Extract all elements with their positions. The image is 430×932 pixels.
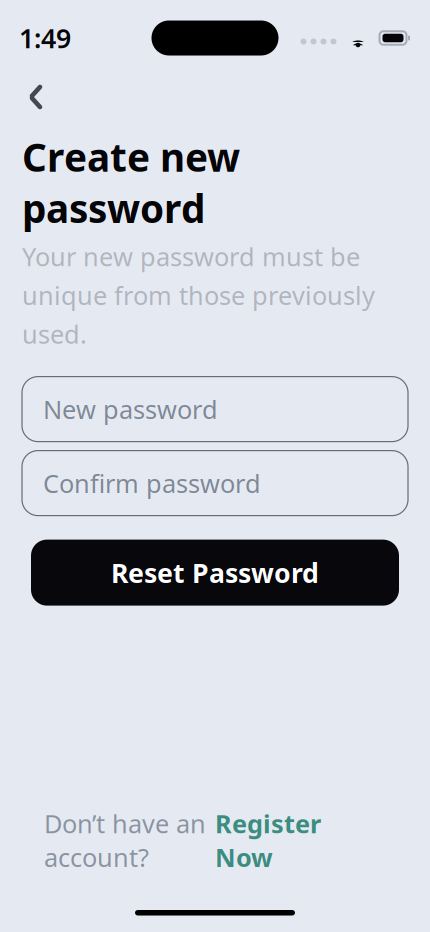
button[interactable]: New password bbox=[22, 377, 408, 442]
staticText: Reset Password bbox=[111, 555, 319, 590]
staticText: New password bbox=[43, 392, 218, 426]
staticText: Your new password must be unique from th… bbox=[22, 240, 375, 351]
button[interactable]: Reset Password bbox=[31, 540, 399, 606]
staticText: Register Now bbox=[215, 807, 321, 874]
staticText: Create new password bbox=[22, 131, 240, 234]
staticText: Don’t have an account? bbox=[44, 807, 206, 874]
button[interactable]: Don’t have an account? bbox=[32, 799, 398, 882]
staticText: Confirm password bbox=[43, 466, 261, 500]
button[interactable]: Back bbox=[14, 75, 58, 119]
button[interactable]: Confirm password bbox=[22, 451, 408, 516]
staticText: 1:49 bbox=[19, 20, 71, 56]
